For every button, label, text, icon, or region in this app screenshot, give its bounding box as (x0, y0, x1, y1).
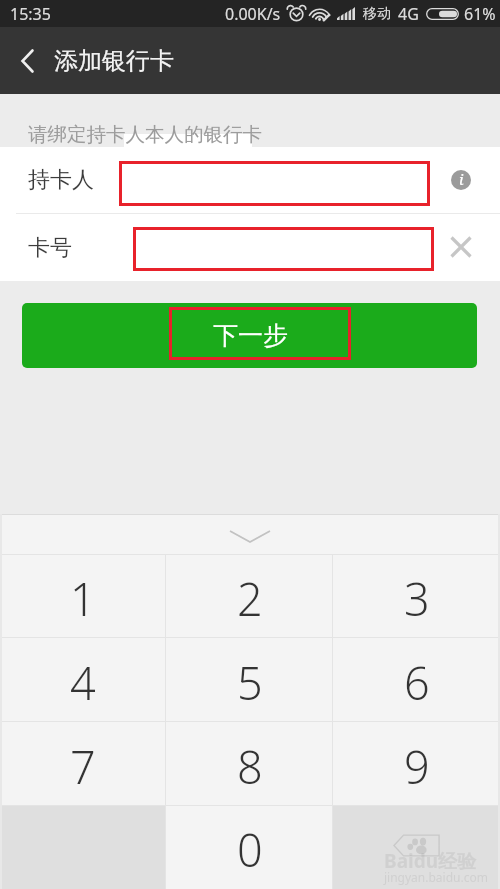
staticText: 61% (464, 3, 496, 25)
staticText: 6 (404, 652, 430, 713)
staticText: 7 (70, 736, 96, 797)
staticText: 8 (237, 736, 263, 797)
staticText: 15:35 (10, 3, 51, 25)
button[interactable] (133, 227, 434, 271)
staticText: 1 (70, 568, 96, 629)
button[interactable]: 1 (0, 555, 166, 638)
button[interactable]: 6 (333, 638, 500, 722)
button[interactable]: Delete (333, 806, 500, 889)
staticText: 2 (237, 568, 263, 629)
button[interactable]: Back (4, 27, 50, 94)
staticText: 移动 (363, 5, 391, 23)
button[interactable]: 0 (166, 806, 333, 889)
button[interactable]: 5 (166, 638, 333, 722)
button[interactable]: 9 (333, 722, 500, 806)
staticText: 4G (398, 3, 419, 25)
button[interactable]: 4 (0, 638, 166, 722)
button[interactable]: 7 (0, 722, 166, 806)
staticText: 持卡人 (28, 166, 94, 194)
button[interactable] (22, 303, 477, 368)
staticText: 添加银行卡 (54, 46, 174, 76)
staticText: 卡号 (28, 234, 72, 262)
button[interactable]: Clear (447, 233, 475, 261)
staticText: 下一步 (213, 320, 288, 351)
staticText: 5 (237, 652, 263, 713)
button[interactable]: 2 (166, 555, 333, 638)
button[interactable]: 8 (166, 722, 333, 806)
staticText: 9 (404, 736, 430, 797)
button[interactable]: Info (447, 166, 475, 194)
button[interactable]: Hide keyboard (0, 514, 500, 555)
staticText: 请绑定持卡人本人的银行卡 (28, 122, 262, 147)
staticText: 3 (404, 568, 430, 629)
staticText: Baidu经验 (384, 848, 477, 874)
button[interactable] (119, 161, 430, 206)
staticText: 0 (237, 819, 263, 880)
staticText: jingyan.baidu.com (384, 869, 488, 885)
button[interactable]: 3 (333, 555, 500, 638)
staticText: 4 (70, 652, 96, 713)
staticText: 0.00K/s (225, 3, 281, 25)
staticText: i (459, 169, 464, 189)
